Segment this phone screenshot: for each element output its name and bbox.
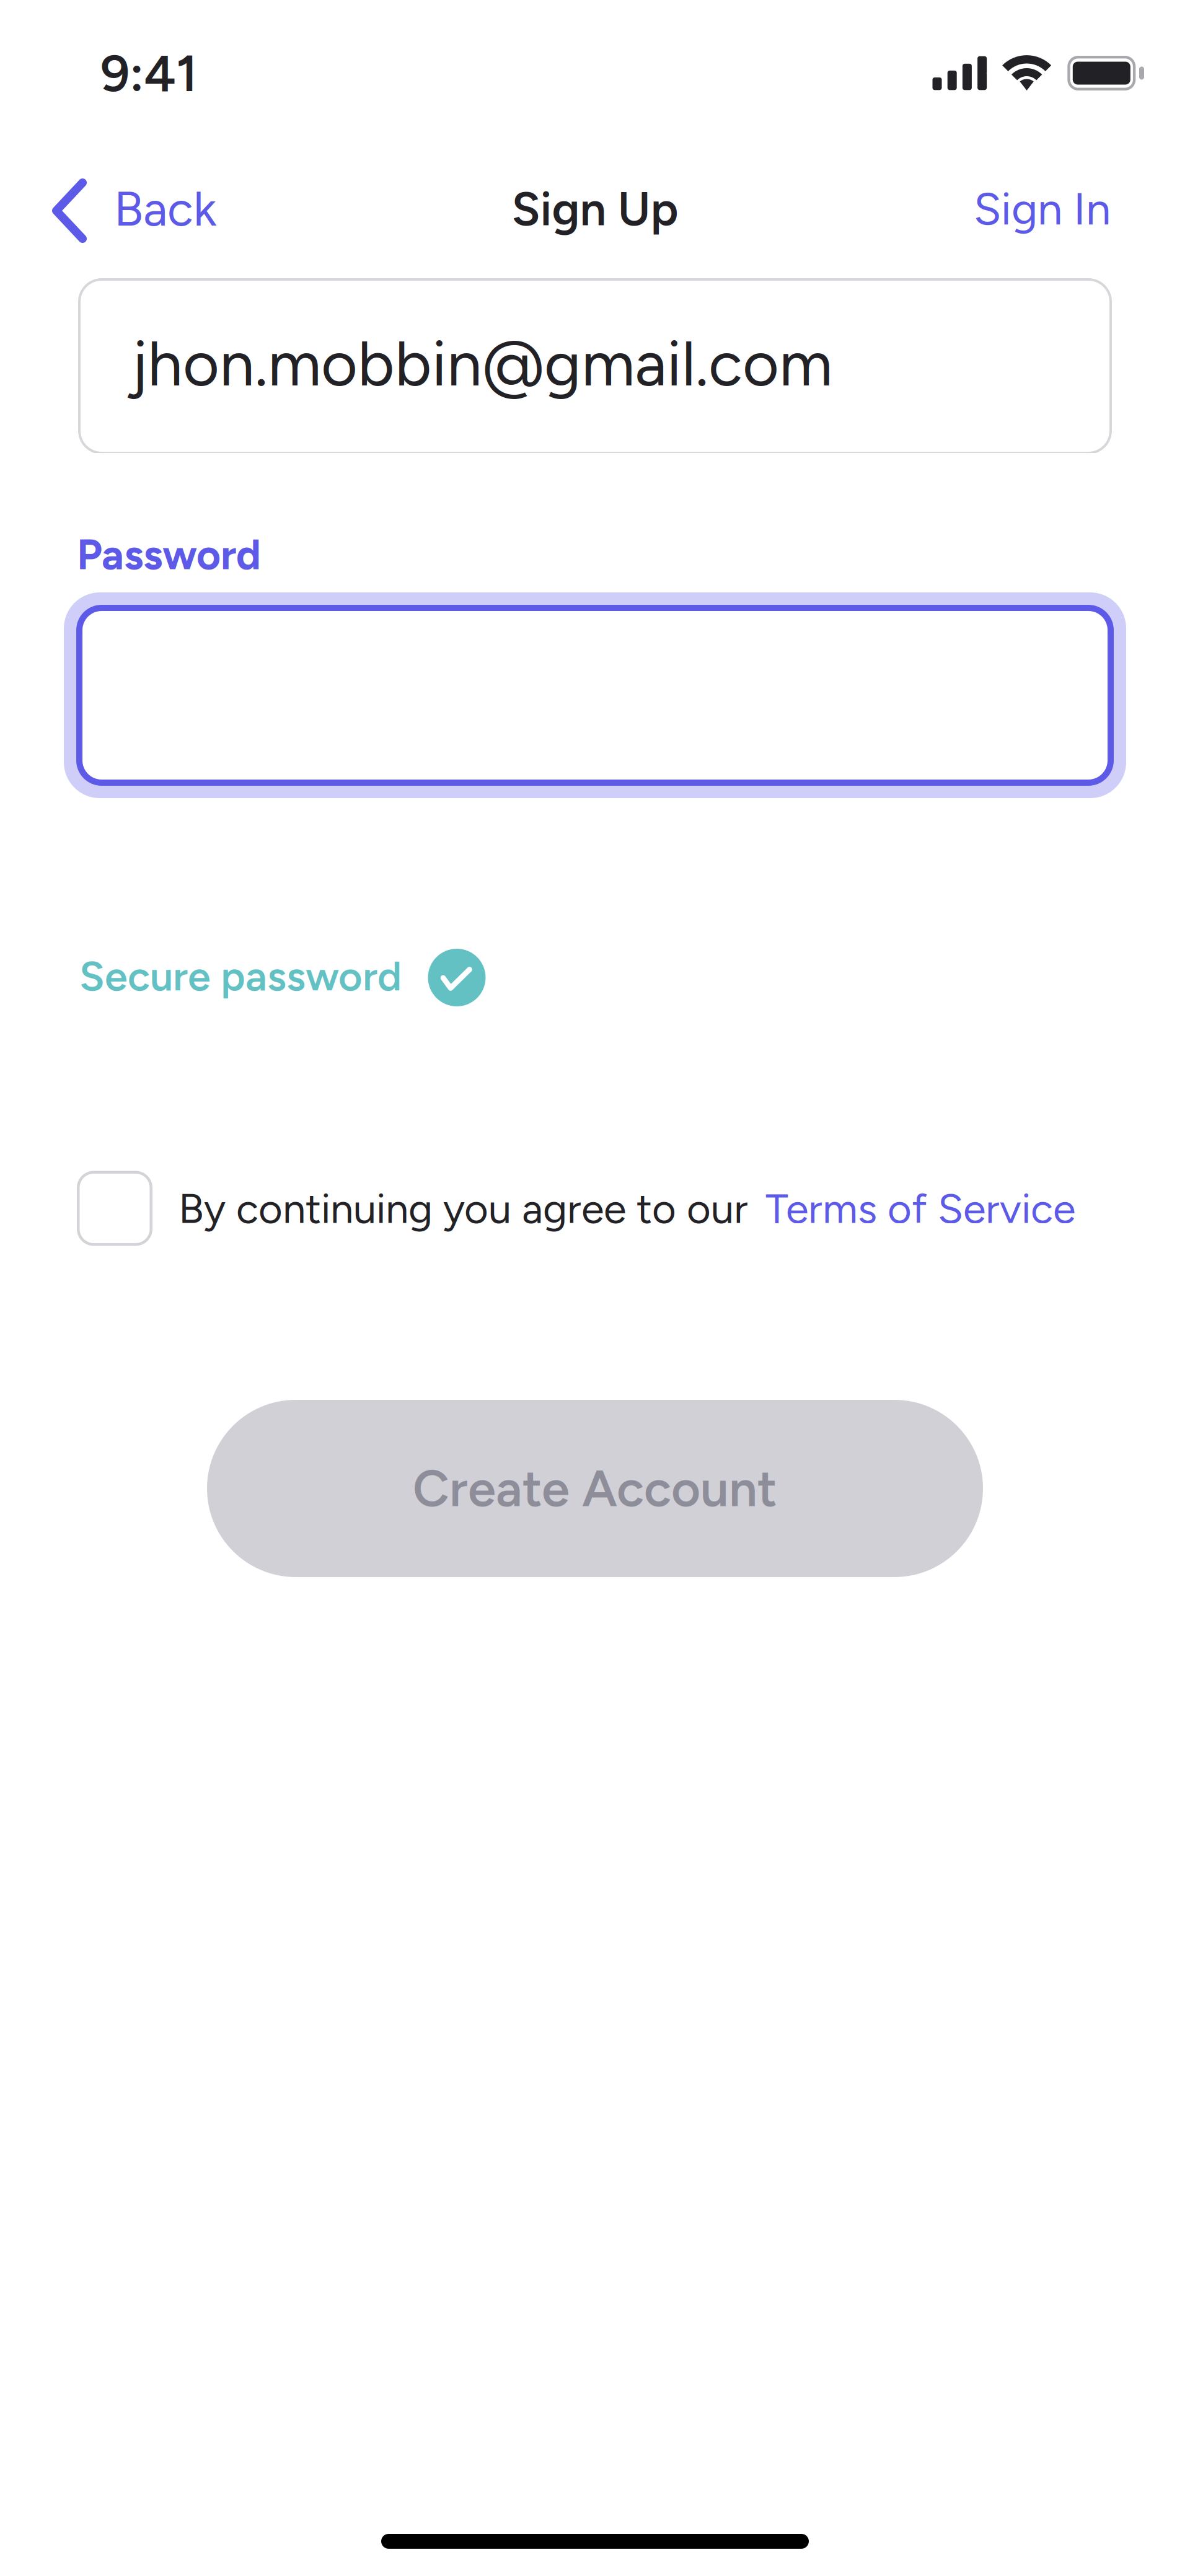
staticText: jhon.mobbin@gmail.com [131,326,832,401]
staticText: Sign Up [512,181,678,237]
button[interactable]: Agree to Terms of Service [77,1171,152,1246]
button[interactable]: Create Account [207,1400,983,1577]
staticText: Sign In [974,182,1111,236]
button[interactable]: Sign In [974,182,1111,236]
staticText: 9:41 [100,42,198,104]
button[interactable]: Back [52,175,216,243]
staticText: Password [77,530,261,580]
button[interactable]: jhon.mobbin@gmail.com [79,279,1111,453]
button[interactable]: Password [64,592,1126,798]
button[interactable]: Terms of Service [765,1184,1075,1233]
staticText: Terms of Service [765,1184,1075,1233]
staticText: Back [114,180,216,238]
staticText: Secure password [79,951,402,1001]
staticText: By continuing you agree to our [178,1184,748,1233]
staticText: Create Account [413,1458,777,1519]
